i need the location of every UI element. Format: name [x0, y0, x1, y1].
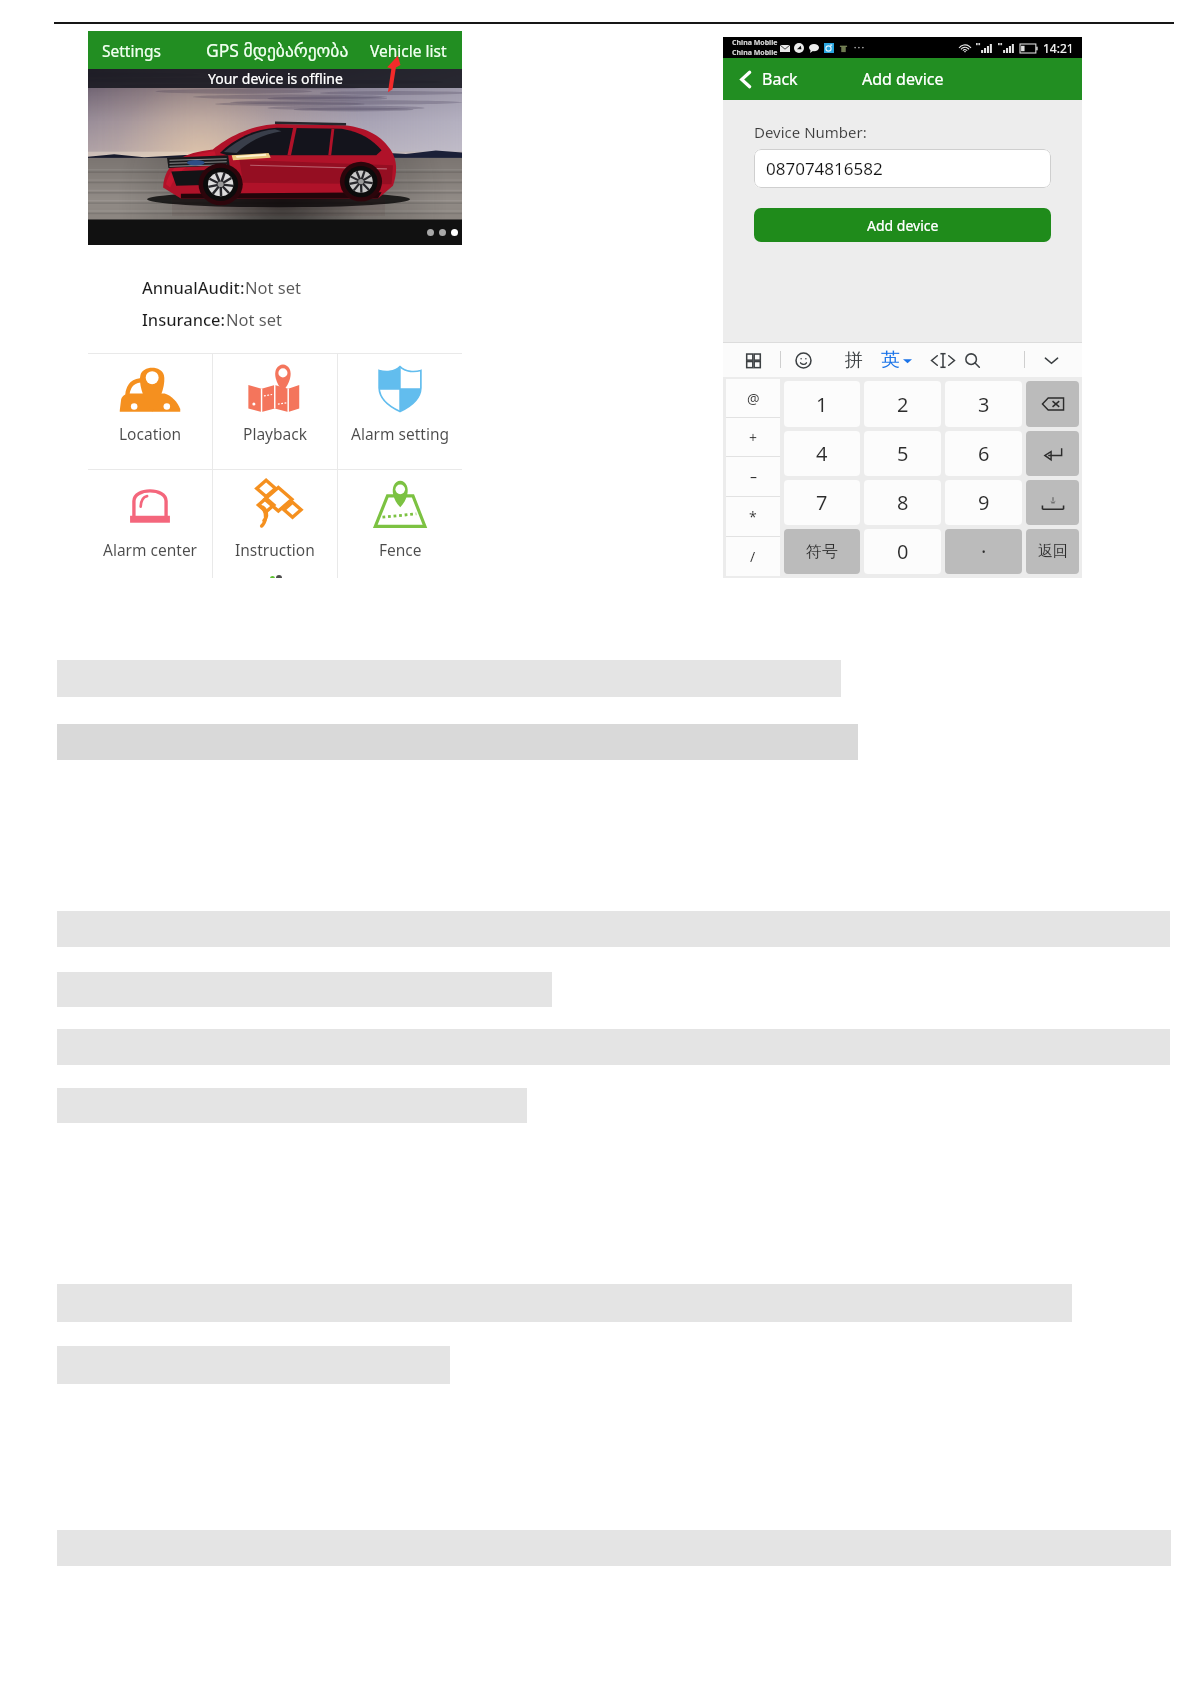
staticText: • • •: [854, 44, 864, 52]
staticText: 4: [816, 440, 828, 467]
button[interactable]: ·: [945, 529, 1022, 574]
staticText: 9: [978, 489, 990, 516]
staticText: Alarm center: [103, 539, 198, 560]
staticText: 6: [978, 440, 990, 467]
staticText: AnnualAudit:: [142, 276, 245, 298]
staticText: 14:21: [1043, 40, 1074, 56]
staticText: Add device: [862, 68, 944, 90]
button[interactable]: Enter: [1026, 431, 1079, 476]
button[interactable]: Cursor: [926, 343, 960, 377]
staticText: China Mobile: [732, 48, 778, 58]
button[interactable]: Back: [736, 58, 798, 100]
button[interactable]: 1: [784, 381, 860, 427]
staticText: ·: [981, 538, 987, 565]
staticText: 0: [897, 538, 909, 565]
button[interactable]: @: [726, 379, 780, 417]
button[interactable]: Playback: [213, 354, 337, 469]
button[interactable]: 9: [945, 480, 1022, 525]
staticText: *: [749, 507, 757, 526]
staticText: Instruction: [235, 539, 315, 560]
staticText: 087074816582: [766, 157, 883, 180]
button[interactable]: 0: [864, 529, 941, 574]
button[interactable]: Pinyin: [837, 343, 871, 377]
staticText: 2: [897, 391, 909, 418]
button[interactable]: 2: [864, 381, 941, 427]
button[interactable]: Location: [88, 354, 212, 469]
staticText: Settings: [102, 40, 161, 61]
button[interactable]: Fence: [338, 470, 462, 578]
staticText: +: [749, 428, 758, 447]
staticText: 符号: [806, 542, 838, 562]
button[interactable]: English: [879, 343, 913, 377]
button[interactable]: 7: [784, 480, 860, 525]
staticText: –: [750, 467, 757, 486]
button[interactable]: –: [726, 457, 780, 496]
staticText: GPS მდებარეობა: [206, 38, 349, 62]
staticText: /: [750, 547, 756, 566]
staticText: 5: [897, 440, 909, 467]
staticText: Back: [762, 68, 798, 90]
button[interactable]: Alarm setting: [338, 354, 462, 469]
staticText: 返回: [1038, 542, 1068, 561]
button[interactable]: Emoji: [786, 343, 820, 377]
staticText: Device Number:: [754, 122, 867, 142]
button[interactable]: GPS მდებარეობა: [175, 31, 354, 69]
staticText: 8: [897, 489, 909, 516]
staticText: @: [747, 389, 760, 408]
button[interactable]: Instruction: [213, 470, 337, 578]
staticText: China Mobile: [732, 38, 778, 48]
button[interactable]: 6: [945, 431, 1022, 476]
staticText: Insurance:: [142, 308, 226, 330]
button[interactable]: 8: [864, 480, 941, 525]
staticText: Vehicle list: [370, 40, 447, 61]
button[interactable]: Keyboard layouts: [736, 343, 770, 377]
button[interactable]: +: [726, 418, 780, 456]
staticText: Your device is offline: [208, 69, 343, 88]
staticText: 7: [816, 489, 828, 516]
staticText: 英: [881, 348, 900, 372]
button[interactable]: Return: [1026, 529, 1079, 574]
staticText: 3: [978, 391, 990, 418]
button[interactable]: 5: [864, 431, 941, 476]
staticText: Alarm setting: [351, 423, 449, 444]
button[interactable]: Search: [955, 343, 989, 377]
button[interactable]: Vehicle list: [354, 31, 462, 69]
button[interactable]: Backspace: [1026, 381, 1079, 427]
button[interactable]: Space: [1026, 480, 1079, 525]
button[interactable]: Add device: [754, 208, 1051, 242]
button[interactable]: Alarm center: [88, 470, 212, 578]
button[interactable]: Settings: [88, 31, 175, 69]
button[interactable]: 符号: [784, 529, 860, 574]
button[interactable]: 3: [945, 381, 1022, 427]
button[interactable]: *: [726, 497, 780, 536]
staticText: Fence: [379, 539, 422, 560]
button[interactable]: 087074816582: [754, 149, 1051, 188]
button[interactable]: 4: [784, 431, 860, 476]
staticText: 拼: [845, 349, 863, 372]
staticText: 1: [816, 391, 828, 418]
staticText: Add device: [867, 216, 939, 235]
staticText: Not set: [245, 276, 301, 298]
staticText: Location: [119, 423, 182, 444]
button[interactable]: Hide keyboard: [1034, 343, 1068, 377]
staticText: Playback: [243, 423, 307, 444]
button[interactable]: /: [726, 537, 780, 576]
staticText: Not set: [226, 308, 282, 330]
